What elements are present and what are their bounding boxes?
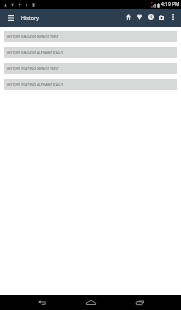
button[interactable]: HISTORY (FILIPINO) ALPHABETICALLY — [4, 79, 177, 90]
button[interactable]: HISTORY (ENGLISH) ALPHABETICALLY — [4, 47, 177, 58]
staticText: HISTORY (FILIPINO) ALPHABETICALLY — [7, 83, 63, 87]
button[interactable]: Favorites — [134, 8, 145, 26]
button[interactable]: History — [145, 8, 156, 26]
button[interactable]: Open navigation drawer — [3, 10, 19, 26]
button[interactable]: Recent apps — [127, 295, 152, 310]
staticText: HISTORY (ENGLISH) NEWEST FIRST — [7, 35, 59, 39]
button[interactable]: More options — [167, 8, 178, 26]
button[interactable]: HISTORY (FILIPINO) NEWEST FIRST — [4, 63, 177, 74]
button[interactable]: Back — [29, 295, 54, 310]
button[interactable]: HISTORY (ENGLISH) NEWEST FIRST — [4, 31, 177, 42]
button[interactable]: Home — [78, 295, 103, 310]
staticText: History — [21, 14, 39, 21]
button[interactable]: Camera — [156, 8, 167, 26]
staticText: 4:19 PM — [161, 1, 180, 8]
button[interactable]: Home — [123, 8, 134, 26]
staticText: HISTORY (ENGLISH) ALPHABETICALLY — [7, 51, 63, 55]
staticText: HISTORY (FILIPINO) NEWEST FIRST — [7, 67, 59, 71]
